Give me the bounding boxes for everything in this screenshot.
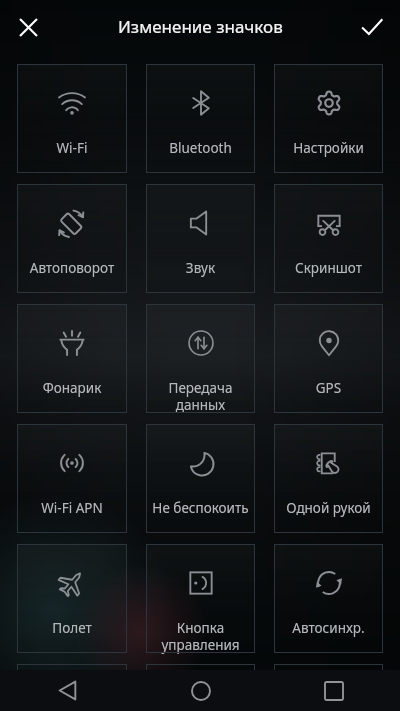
staticText: Скриншот [274, 259, 383, 277]
button[interactable] [274, 664, 383, 704]
staticText: Полет [17, 619, 127, 637]
button[interactable]: Home [134, 670, 267, 711]
staticText: Одной рукой [274, 499, 383, 517]
staticText: GPS [274, 379, 383, 397]
button[interactable]: Кнопка управления [146, 544, 255, 653]
staticText: Передача данных [146, 379, 255, 414]
button[interactable]: Back [0, 670, 134, 711]
button[interactable]: Close [0, 0, 56, 54]
button[interactable]: Confirm [344, 0, 400, 54]
button[interactable] [146, 664, 255, 704]
button[interactable]: Фонарик [17, 304, 127, 413]
button[interactable]: GPS [274, 304, 383, 413]
staticText: Кнопка управления [146, 619, 255, 654]
button[interactable]: Передача данных [146, 304, 255, 413]
staticText: Wi-Fi APN [17, 499, 127, 517]
button[interactable]: Звук [146, 184, 255, 293]
button[interactable]: Одной рукой [274, 424, 383, 533]
button[interactable]: Автосинхр. [274, 544, 383, 653]
staticText: Звук [146, 259, 255, 277]
button[interactable]: Bluetooth [146, 64, 255, 173]
button[interactable]: Wi-Fi APN [17, 424, 127, 533]
staticText: Bluetooth [146, 139, 255, 157]
button[interactable]: Скриншот [274, 184, 383, 293]
staticText: Автоповорот [17, 259, 127, 277]
staticText: Не беспокоить [146, 499, 255, 517]
button[interactable]: Полет [17, 544, 127, 653]
button[interactable]: Не беспокоить [146, 424, 255, 533]
button[interactable]: Автоповорот [17, 184, 127, 293]
button[interactable] [17, 664, 127, 704]
staticText: Фонарик [17, 379, 127, 397]
staticText: Wi-Fi [17, 139, 127, 157]
button[interactable]: Recents [267, 670, 400, 711]
staticText: Изменение значков [118, 15, 283, 38]
button[interactable]: Настройки [274, 64, 383, 173]
staticText: Автосинхр. [274, 619, 383, 637]
button[interactable]: Wi-Fi [17, 64, 127, 173]
staticText: Настройки [274, 139, 383, 157]
